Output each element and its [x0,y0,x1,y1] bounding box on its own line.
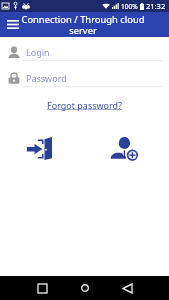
button[interactable]: Forgot password? [45,97,125,113]
button[interactable]: Home [76,279,94,297]
staticText: 21:32 [146,1,166,11]
button[interactable]: Recent apps [33,279,51,297]
button[interactable]: Back [118,279,136,297]
staticText: Password [26,72,67,84]
button[interactable]: Password [8,72,163,87]
staticText: Login [26,46,50,58]
staticText: Connection / Through cloud server [17,13,149,36]
button[interactable]: Login [8,46,163,61]
button[interactable]: Register new account [102,136,146,160]
button[interactable]: Open navigation menu [0,12,25,37]
staticText: 100% [121,2,138,11]
button[interactable]: Log in [17,136,61,160]
